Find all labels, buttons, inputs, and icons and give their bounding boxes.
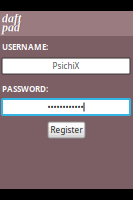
staticText: USERNAME:: [2, 42, 48, 52]
staticText: pad: [2, 21, 20, 34]
staticText: daft: [2, 12, 21, 26]
staticText: daft: [2, 12, 21, 25]
staticText: PASSWORD:: [2, 84, 48, 94]
button[interactable]: Register: [48, 122, 85, 138]
staticText: ••••••••••••: [47, 102, 83, 112]
staticText: Register: [50, 125, 82, 135]
staticText: PsichiX: [52, 61, 79, 71]
staticText: pad: [2, 21, 20, 35]
